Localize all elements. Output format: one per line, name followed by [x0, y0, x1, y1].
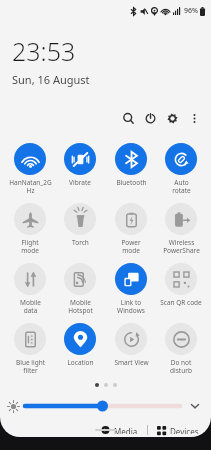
button[interactable]: Mobile Hotspot	[56, 261, 104, 317]
button[interactable]: Expand brightness	[186, 397, 204, 415]
button[interactable]: Smart View	[107, 321, 155, 369]
button[interactable]: Settings	[161, 107, 183, 129]
staticText: Blue light filter	[16, 358, 45, 375]
staticText: Mobile Hotspot	[68, 298, 93, 315]
staticText: Scan QR code	[160, 298, 202, 307]
staticText: 23:53	[12, 34, 76, 68]
staticText: HanNatan_2G Hz	[9, 178, 52, 195]
staticText: Media	[114, 426, 138, 434]
staticText: Wireless PowerShare	[163, 238, 200, 255]
button[interactable]: Auto rotate	[157, 141, 205, 197]
button[interactable]: Do not disturb	[157, 321, 205, 377]
button[interactable]: Power mode	[107, 201, 155, 257]
button[interactable]: Search	[117, 107, 139, 129]
button[interactable]: HanNatan_2G Hz	[6, 141, 54, 197]
staticText: Location	[67, 358, 94, 367]
button[interactable]: Torch	[56, 201, 104, 249]
staticText: Vibrate	[69, 178, 91, 187]
button[interactable]: Brightness	[25, 396, 180, 416]
button[interactable]: More options	[183, 107, 205, 129]
staticText: Do not disturb	[170, 358, 192, 375]
staticText: Link to Windows	[117, 298, 145, 315]
button[interactable]: Flight mode	[6, 201, 54, 257]
button[interactable]: Scan QR code	[157, 261, 205, 309]
button[interactable]: Vibrate	[56, 141, 104, 189]
button[interactable]: Bluetooth	[107, 141, 155, 189]
button[interactable]: Media	[96, 423, 142, 437]
staticText: Flight mode	[21, 238, 39, 255]
staticText: Bluetooth	[116, 178, 147, 187]
staticText: Auto rotate	[172, 178, 191, 195]
staticText: Devices	[170, 426, 199, 434]
staticText: Smart View	[114, 358, 149, 367]
button[interactable]: Mobile data	[6, 261, 54, 317]
button[interactable]: Devices	[153, 423, 203, 437]
button[interactable]: Wireless PowerShare	[157, 201, 205, 257]
staticText: Power mode	[121, 238, 141, 255]
staticText: 96%	[184, 6, 198, 16]
button[interactable]: Link to Windows	[107, 261, 155, 317]
button[interactable]: Location	[56, 321, 104, 369]
button[interactable]: Power	[139, 107, 161, 129]
button[interactable]: Blue light filter	[6, 321, 54, 377]
staticText: Mobile data	[20, 298, 41, 315]
staticText: Torch	[72, 238, 89, 247]
staticText: Sun, 16 August	[12, 72, 90, 87]
